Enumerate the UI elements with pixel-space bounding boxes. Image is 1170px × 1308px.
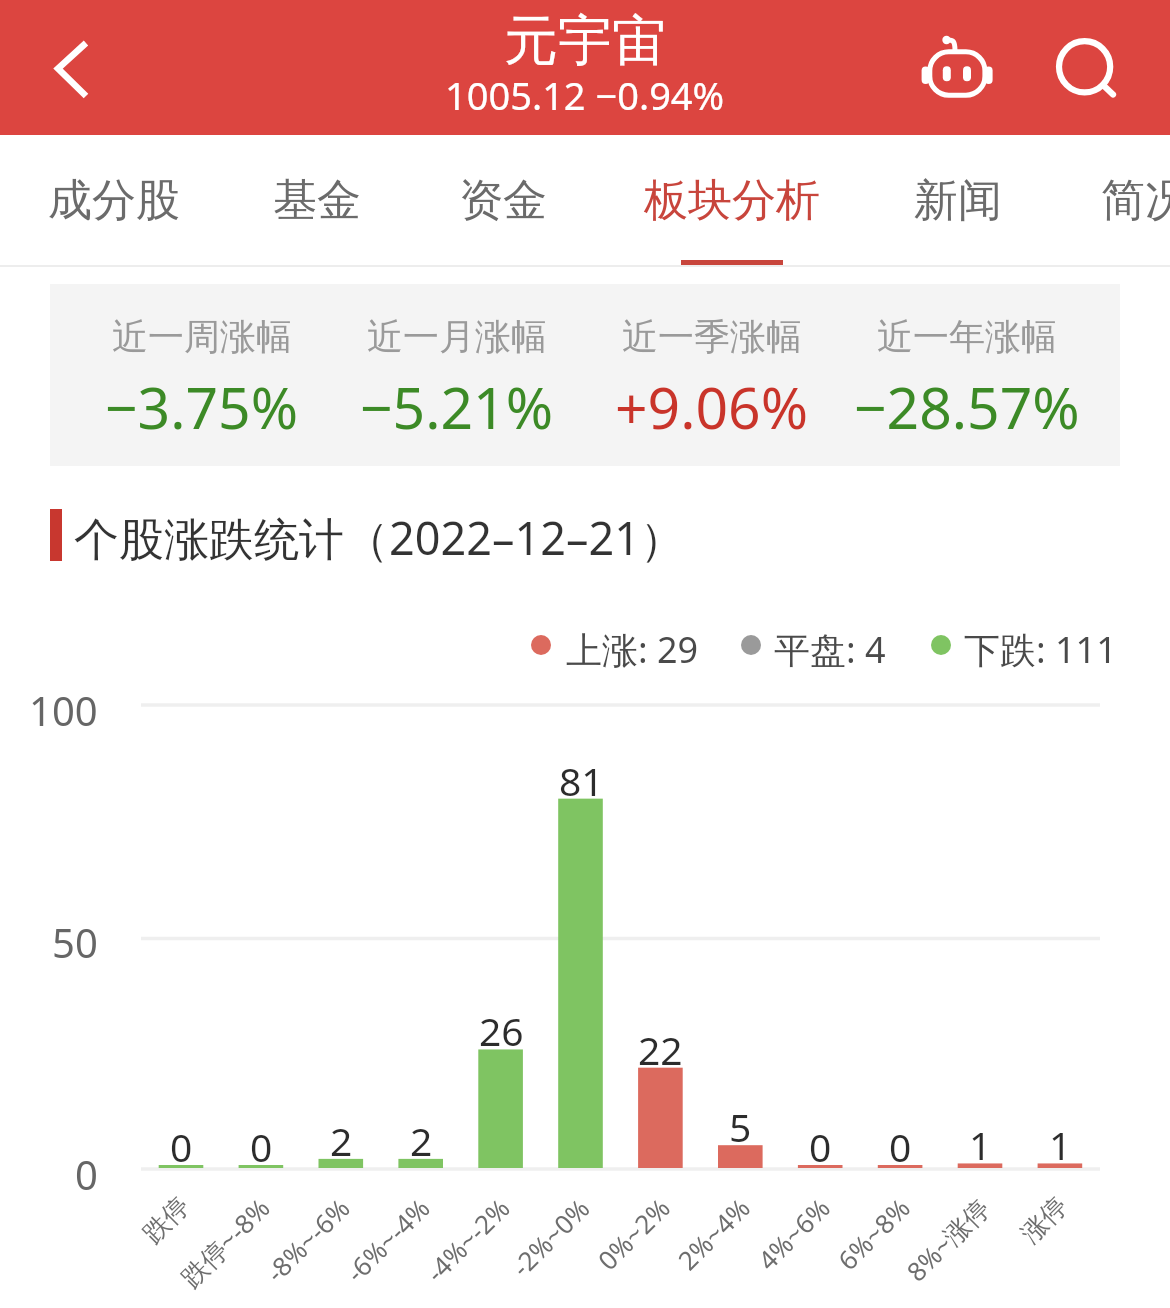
staticText: -2%~0% bbox=[503, 1190, 597, 1283]
staticText: 近一月涨幅 bbox=[367, 314, 547, 359]
staticText: 下跌: 111 bbox=[964, 625, 1117, 674]
staticText: 0 bbox=[75, 1147, 98, 1201]
button[interactable]: 近一周涨幅 bbox=[52, 314, 352, 434]
staticText: 跌停~-8% bbox=[173, 1190, 277, 1295]
button[interactable]: 近一年涨幅 bbox=[817, 314, 1117, 434]
staticText: 元宇宙 bbox=[504, 7, 666, 75]
staticText: −5.21% bbox=[360, 368, 554, 446]
button[interactable]: 近一季涨幅 bbox=[562, 314, 862, 434]
button[interactable]: Back bbox=[10, 12, 120, 122]
button[interactable]: 平盘: 4 bbox=[737, 620, 902, 670]
staticText: 22 bbox=[638, 1023, 683, 1076]
staticText: −3.75% bbox=[105, 368, 299, 446]
staticText: 基金 bbox=[273, 173, 361, 228]
staticText: 50 bbox=[52, 915, 98, 969]
button[interactable]: 个股涨跌统计（2022–12–21） bbox=[0, 509, 1170, 565]
staticText: 0 bbox=[889, 1120, 912, 1173]
button[interactable]: 下跌: 111 bbox=[927, 620, 1119, 670]
staticText: 100 bbox=[29, 683, 98, 737]
button[interactable]: AI assistant bbox=[905, 25, 1010, 130]
button[interactable]: 基金 bbox=[273, 137, 361, 263]
staticText: 1 bbox=[969, 1118, 992, 1171]
staticText: 近一季涨幅 bbox=[622, 314, 802, 359]
staticText: 6%~8% bbox=[830, 1190, 917, 1277]
staticText: 8%~涨停 bbox=[898, 1190, 997, 1289]
staticText: 近一年涨幅 bbox=[877, 314, 1057, 359]
staticText: 板块分析 bbox=[644, 173, 820, 228]
staticText: 26 bbox=[479, 1004, 524, 1057]
staticText: 简况 bbox=[1101, 173, 1170, 228]
button[interactable]: 近一月涨幅 bbox=[307, 314, 607, 434]
staticText: 2 bbox=[410, 1114, 433, 1167]
button[interactable]: 上涨: 29 bbox=[527, 620, 716, 670]
staticText: 平盘: 4 bbox=[774, 625, 886, 674]
staticText: 个股涨跌统计（2022–12–21） bbox=[74, 507, 685, 563]
staticText: 0 bbox=[170, 1120, 193, 1173]
staticText: 0 bbox=[250, 1120, 273, 1173]
button[interactable]: 成分股 bbox=[48, 137, 180, 263]
button[interactable]: 资金 bbox=[459, 137, 547, 263]
staticText: 4%~6% bbox=[750, 1190, 837, 1277]
staticText: 近一周涨幅 bbox=[112, 314, 292, 359]
button[interactable]: Search bbox=[1040, 22, 1130, 112]
staticText: -4%~-2% bbox=[418, 1190, 517, 1289]
button[interactable]: 简况 bbox=[1101, 137, 1170, 263]
button[interactable]: 新闻 bbox=[914, 137, 1002, 263]
staticText: 0%~2% bbox=[590, 1190, 677, 1277]
staticText: 新闻 bbox=[914, 173, 1002, 228]
staticText: -8%~-6% bbox=[258, 1190, 357, 1289]
staticText: 成分股 bbox=[48, 173, 180, 228]
button[interactable]: 板块分析 bbox=[644, 137, 820, 263]
staticText: 1 bbox=[1049, 1118, 1072, 1171]
staticText: 上涨: 29 bbox=[566, 625, 699, 674]
staticText: 跌停 bbox=[136, 1190, 196, 1250]
staticText: -6%~-4% bbox=[338, 1190, 437, 1289]
staticText: 2 bbox=[330, 1114, 353, 1167]
staticText: 涨停 bbox=[1014, 1190, 1074, 1250]
staticText: 1005.12 −0.94% bbox=[445, 69, 725, 121]
staticText: −28.57% bbox=[854, 368, 1080, 446]
staticText: +9.06% bbox=[615, 368, 809, 446]
staticText: 资金 bbox=[459, 173, 547, 228]
staticText: 5 bbox=[729, 1100, 752, 1153]
staticText: 0 bbox=[809, 1120, 832, 1173]
staticText: 2%~4% bbox=[670, 1190, 757, 1277]
staticText: 81 bbox=[559, 754, 604, 807]
